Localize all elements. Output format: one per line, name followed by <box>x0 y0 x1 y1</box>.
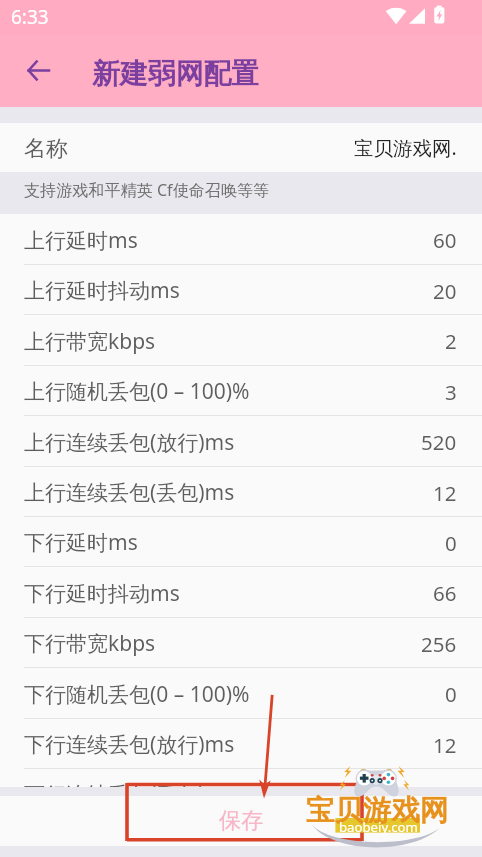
button[interactable]: 上行连续丢包(丢包)ms <box>0 467 482 516</box>
staticText: 名称 <box>24 135 68 163</box>
staticText: 宝贝游戏网 <box>306 793 448 829</box>
staticText: 60 <box>433 226 457 254</box>
button[interactable]: 下行延时抖动ms <box>0 567 482 617</box>
staticText: 上行随机丢包(0 – 100)% <box>24 377 250 406</box>
staticText: 66 <box>433 579 457 607</box>
button[interactable]: 名称 <box>0 123 482 172</box>
staticText: 上行带宽kbps <box>24 327 156 356</box>
staticText: 3 <box>445 378 457 406</box>
button[interactable]: 下行随机丢包(0 – 100)% <box>0 668 482 718</box>
button[interactable]: 下行带宽kbps <box>0 618 482 667</box>
button[interactable]: 上行随机丢包(0 – 100)% <box>0 366 482 415</box>
staticText: 上行连续丢包(丢包)ms <box>24 478 235 507</box>
staticText: 保存 <box>219 807 263 835</box>
staticText: 下行连续丢包(丢包)ms <box>24 780 235 809</box>
button[interactable]: 下行连续丢包(丢包)ms <box>0 769 482 818</box>
staticText: 支持游戏和平精英 Cf使命召唤等等 <box>24 179 270 201</box>
button[interactable]: 上行带宽kbps <box>0 315 482 365</box>
staticText: baobeiy.com <box>339 818 418 836</box>
staticText: 下行延时ms <box>24 528 138 557</box>
button[interactable]: Back <box>15 49 60 94</box>
staticText: 520 <box>421 428 457 456</box>
staticText: 上行延时抖动ms <box>24 276 180 305</box>
staticText: 宝贝游戏网. <box>354 134 457 161</box>
staticText: 下行带宽kbps <box>24 629 156 658</box>
staticText: 下行延时抖动ms <box>24 579 180 608</box>
staticText: 上行延时ms <box>24 226 138 255</box>
button[interactable]: 上行连续丢包(放行)ms <box>0 416 482 466</box>
button[interactable]: 下行延时ms <box>0 517 482 566</box>
button[interactable]: 保存 <box>0 796 482 846</box>
staticText: 0 <box>445 529 457 557</box>
staticText: 12 <box>433 479 457 507</box>
staticText: 0 <box>445 680 457 708</box>
staticText: 2 <box>445 327 457 355</box>
staticText: 下行随机丢包(0 – 100)% <box>24 680 250 709</box>
button[interactable]: 上行延时抖动ms <box>0 265 482 314</box>
staticText: 12 <box>433 781 457 809</box>
staticText: 12 <box>433 731 457 759</box>
button[interactable]: 下行连续丢包(放行)ms <box>0 719 482 768</box>
staticText: 新建弱网配置 <box>92 56 259 91</box>
staticText: 20 <box>433 277 457 305</box>
staticText: 6:33 <box>11 4 49 30</box>
staticText: 下行连续丢包(放行)ms <box>24 730 235 759</box>
button[interactable]: 上行延时ms <box>0 214 482 264</box>
staticText: 上行连续丢包(放行)ms <box>24 428 235 457</box>
staticText: 256 <box>421 630 457 658</box>
